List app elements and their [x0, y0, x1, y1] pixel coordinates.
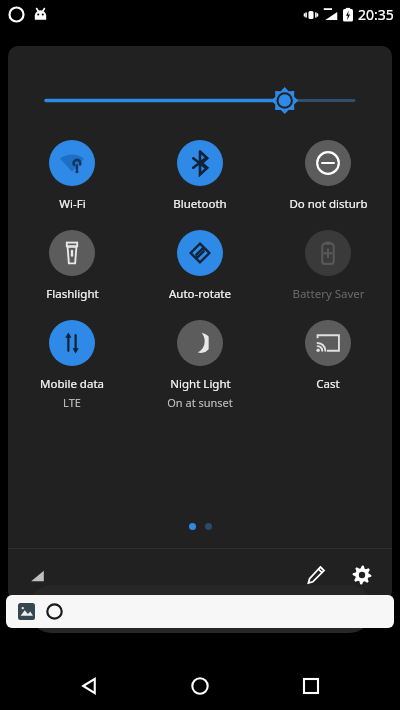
- button[interactable]: Do not disturb: [264, 140, 392, 212]
- button[interactable]: Flashlight: [8, 230, 136, 302]
- staticText: Bluetooth: [173, 196, 227, 212]
- staticText: Cast: [316, 376, 340, 392]
- button[interactable]: Recent apps: [289, 664, 333, 708]
- button[interactable]: Home: [178, 664, 222, 708]
- button[interactable]: Mobile data: [8, 320, 136, 410]
- staticText: Do not disturb: [289, 196, 368, 212]
- staticText: Night Light: [170, 376, 231, 392]
- button[interactable]: Brightness: [8, 46, 392, 134]
- button[interactable]: Cast: [264, 320, 392, 392]
- button[interactable]: Bluetooth: [136, 140, 264, 212]
- button[interactable]: [28, 585, 373, 633]
- staticText: Battery Saver: [292, 286, 365, 302]
- staticText: Auto-rotate: [169, 286, 231, 302]
- staticText: Flashlight: [46, 286, 99, 302]
- button[interactable]: Night Light: [136, 320, 264, 410]
- staticText: LTE: [63, 395, 81, 410]
- button[interactable]: Back: [67, 664, 111, 708]
- staticText: On at sunset: [167, 395, 233, 410]
- button[interactable]: Auto-rotate: [136, 230, 264, 302]
- staticText: Wi-Fi: [59, 196, 86, 212]
- button[interactable]: Battery Saver: [264, 230, 392, 302]
- button[interactable]: [6, 595, 394, 628]
- staticText: 20:35: [358, 5, 394, 24]
- button[interactable]: Settings: [344, 557, 380, 593]
- staticText: Mobile data: [40, 376, 104, 392]
- button[interactable]: Edit tiles: [298, 557, 334, 593]
- button[interactable]: Wi-Fi: [8, 140, 136, 212]
- button[interactable]: Mobile signal: [20, 558, 54, 592]
